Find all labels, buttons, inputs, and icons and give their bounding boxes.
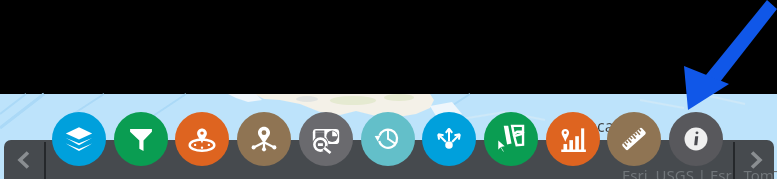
- button[interactable]: Layers: [52, 112, 106, 166]
- button[interactable]: Geoprocessing: [175, 112, 229, 166]
- staticText: aca: [588, 115, 614, 137]
- button[interactable]: Select: [484, 112, 538, 166]
- button[interactable]: History: [361, 112, 415, 166]
- button[interactable]: Filter: [114, 112, 168, 166]
- button[interactable]: Statistics: [546, 112, 600, 166]
- button[interactable]: Measure: [607, 112, 661, 166]
- staticText: Esri, USGS | Esri, TomT: [622, 165, 777, 179]
- button[interactable]: Trace network: [237, 112, 291, 166]
- button[interactable]: Directions: [422, 112, 476, 166]
- button[interactable]: Previous tools: [4, 140, 44, 179]
- button[interactable]: Reports: [299, 112, 353, 166]
- button[interactable]: Info: [669, 112, 723, 166]
- button[interactable]: More tools: [735, 140, 777, 179]
